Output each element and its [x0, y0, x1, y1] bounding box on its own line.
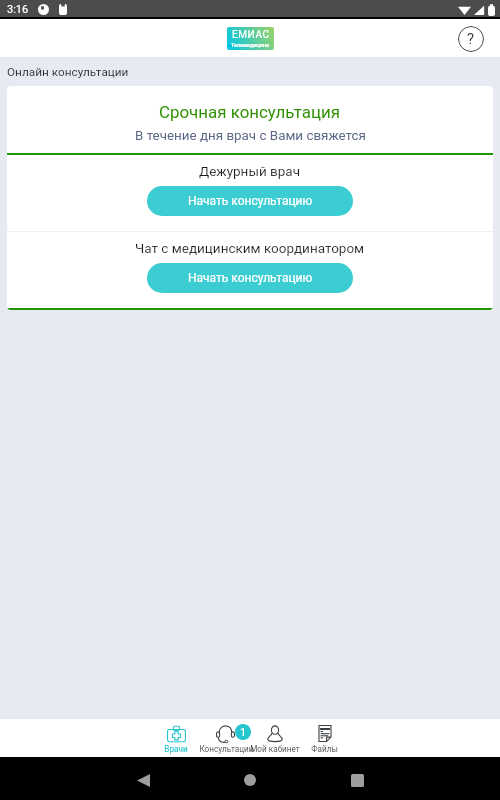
staticText: Файлы [311, 744, 338, 754]
staticText: Срочная консультация [159, 102, 341, 122]
staticText: 3:16 [7, 3, 29, 16]
button[interactable]: Начать консультацию [147, 186, 353, 216]
staticText: Телемедицина [231, 42, 270, 48]
staticText: Дежурный врач [199, 163, 301, 179]
staticText: Онлайн консультации [7, 65, 129, 79]
staticText: Мой кабинет [250, 744, 300, 754]
button[interactable]: ЕМИАС [227, 27, 274, 50]
staticText: Начать консультацию [188, 271, 313, 285]
staticText: ? [467, 30, 475, 48]
button[interactable]: Начать консультацию [147, 263, 353, 293]
button[interactable]: Мой кабинет [248, 719, 302, 757]
staticText: Консультации [199, 744, 253, 754]
staticText: Врачи [164, 744, 188, 754]
button[interactable]: Врачи [149, 719, 203, 757]
button[interactable]: Файлы [297, 719, 351, 757]
button[interactable]: Home [232, 762, 268, 798]
staticText: Чат с медицинским координатором [135, 240, 365, 256]
staticText: 1 [240, 726, 247, 739]
staticText: В течение дня врач с Вами свяжется [135, 128, 366, 144]
button[interactable]: Back [125, 762, 161, 798]
staticText: ЕМИАС [232, 29, 270, 41]
button[interactable]: 1 [199, 719, 253, 757]
button[interactable]: Recents [339, 762, 375, 798]
staticText: Начать консультацию [188, 194, 313, 208]
button[interactable]: Help [458, 26, 484, 52]
